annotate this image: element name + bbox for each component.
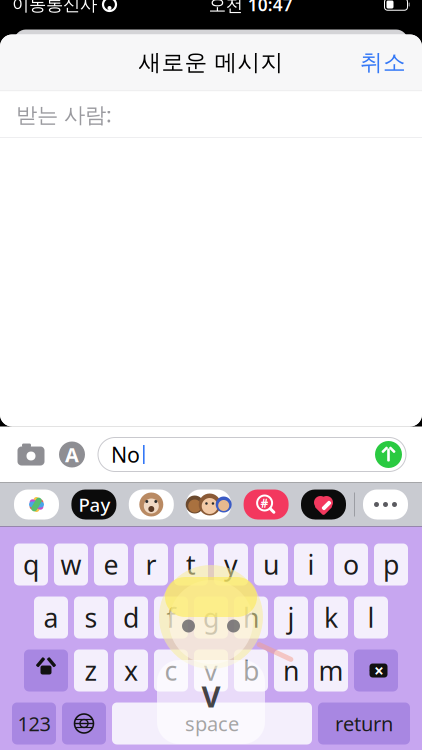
button[interactable]: Apps	[58, 440, 86, 468]
button[interactable]: q	[14, 543, 48, 585]
staticText: A	[65, 441, 79, 468]
button[interactable]: Send	[375, 441, 402, 468]
staticText: q	[23, 547, 39, 582]
button[interactable]: b	[234, 649, 268, 691]
button[interactable]: o	[334, 543, 368, 585]
button[interactable]: f	[154, 596, 188, 638]
staticText: r	[145, 547, 156, 582]
button[interactable]: r	[134, 543, 168, 585]
button[interactable]: Shift	[24, 649, 68, 691]
staticText: w	[60, 547, 81, 582]
staticText: return	[335, 710, 393, 737]
staticText: Pay	[78, 492, 110, 517]
staticText: l	[367, 600, 374, 635]
button[interactable]: Delete	[354, 649, 398, 691]
button[interactable]: z	[74, 649, 108, 691]
button[interactable]: i	[294, 543, 328, 585]
button[interactable]: Next keyboard	[62, 702, 106, 744]
button[interactable]: Digital Touch	[301, 489, 346, 519]
staticText: n	[283, 653, 299, 688]
button[interactable]: g	[194, 596, 228, 638]
button[interactable]: d	[114, 596, 148, 638]
staticText: V	[201, 676, 220, 715]
staticText: p	[383, 547, 399, 582]
button[interactable]: k	[314, 596, 348, 638]
staticText: ×	[374, 659, 384, 682]
staticText: o	[343, 547, 359, 582]
button[interactable]: v	[194, 649, 228, 691]
button[interactable]: a	[34, 596, 68, 638]
staticText: v	[204, 653, 218, 688]
button[interactable]: e	[94, 543, 128, 585]
staticText: 이동통신사	[12, 0, 97, 15]
button[interactable]: t	[174, 543, 208, 585]
button[interactable]: Memoji	[186, 489, 231, 519]
staticText: 취소	[360, 49, 406, 76]
button[interactable]: h	[234, 596, 268, 638]
button[interactable]: w	[54, 543, 88, 585]
button[interactable]: Memoji Stickers	[129, 489, 174, 519]
button[interactable]: m	[314, 649, 348, 691]
staticText: u	[263, 547, 279, 582]
staticText: a	[43, 600, 58, 635]
staticText: #	[261, 495, 269, 511]
button[interactable]: y	[214, 543, 248, 585]
button[interactable]: l	[354, 596, 388, 638]
staticText: j	[287, 600, 294, 635]
button[interactable]: space	[112, 702, 312, 744]
staticText: z	[84, 653, 97, 688]
button[interactable]: x	[114, 649, 148, 691]
button[interactable]: p	[374, 543, 408, 585]
staticText: y	[224, 547, 238, 582]
staticText: t	[186, 547, 196, 582]
staticText: k	[324, 600, 338, 635]
staticText: 오전 10:47	[209, 0, 293, 16]
button[interactable]: c	[154, 649, 188, 691]
staticText: space	[185, 710, 239, 737]
staticText: 받는 사람:	[16, 100, 112, 128]
staticText: c	[164, 653, 177, 688]
button[interactable]: return	[318, 702, 410, 744]
button[interactable]: More	[363, 489, 408, 519]
button[interactable]: 123	[12, 702, 56, 744]
button[interactable]: u	[254, 543, 288, 585]
staticText: h	[243, 600, 259, 635]
button[interactable]: n	[274, 649, 308, 691]
staticText: 123	[17, 710, 50, 737]
staticText: g	[203, 600, 219, 635]
staticText: m	[318, 653, 343, 688]
button[interactable]: Camera	[16, 442, 46, 466]
button[interactable]: Images	[244, 489, 289, 519]
staticText: 새로운 메시지	[138, 49, 283, 76]
staticText: i	[307, 547, 314, 582]
staticText: f	[166, 600, 175, 635]
button[interactable]: j	[274, 596, 308, 638]
staticText: e	[103, 547, 118, 582]
staticText: x	[124, 653, 138, 688]
button[interactable]: s	[74, 596, 108, 638]
staticText: b	[243, 653, 259, 688]
staticText: d	[123, 600, 139, 635]
staticText: No	[111, 440, 140, 469]
button[interactable]: Photos	[14, 489, 59, 519]
button[interactable]: Apple Pay	[71, 489, 116, 519]
staticText: s	[84, 600, 97, 635]
button[interactable]: 취소	[344, 39, 422, 86]
